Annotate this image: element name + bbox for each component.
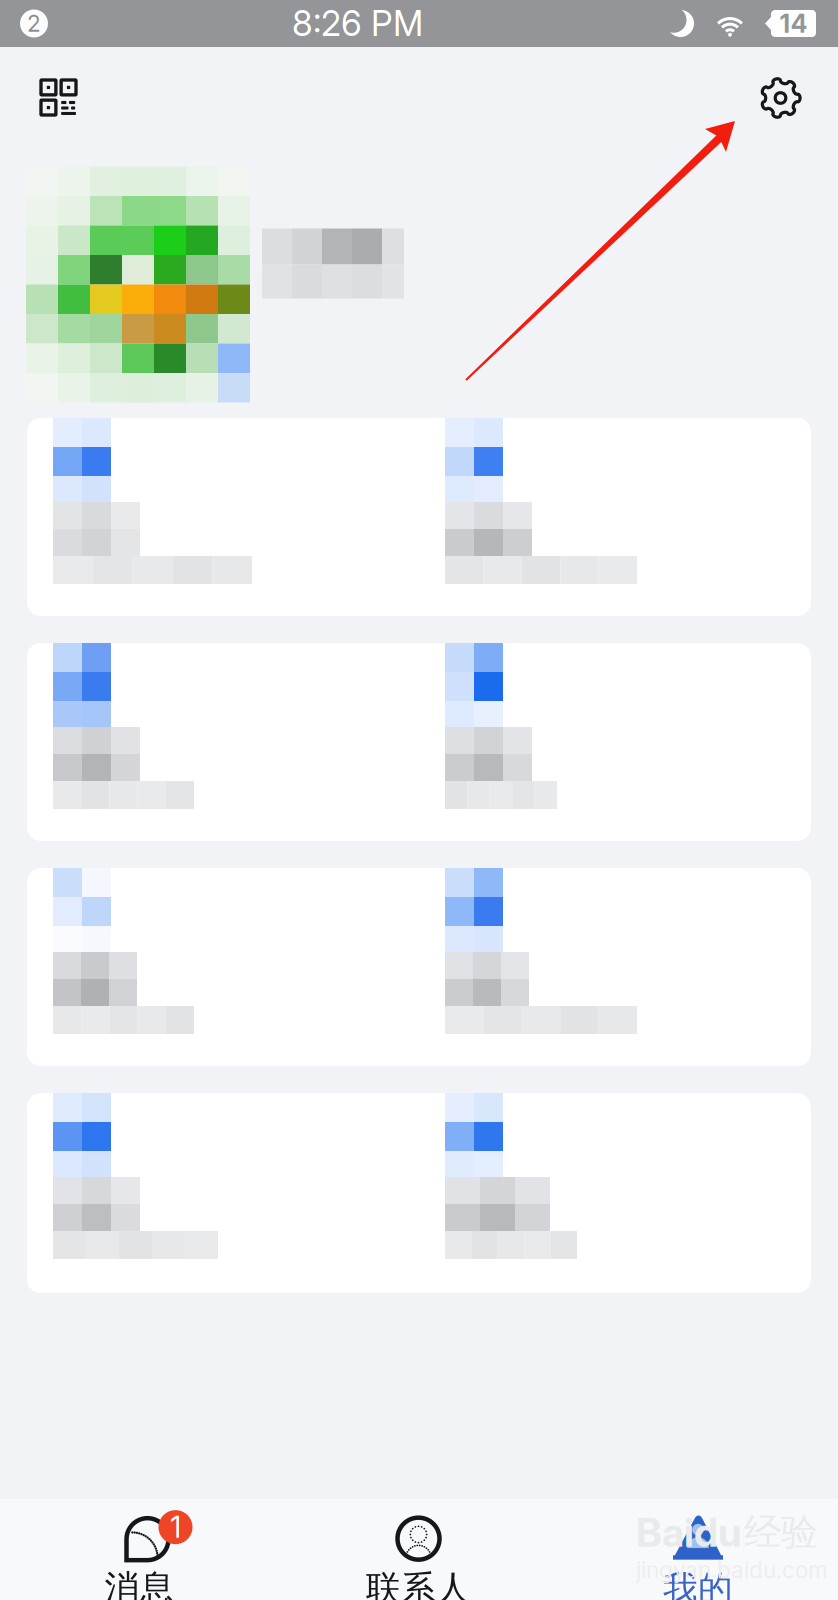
staticText: 8:26 PM — [292, 2, 423, 44]
button[interactable]: 联系人 — [279, 1499, 558, 1600]
staticText: 我的 — [663, 1567, 733, 1600]
button[interactable] — [419, 868, 811, 1066]
button[interactable] — [419, 418, 811, 616]
staticText: 经验 — [744, 1509, 818, 1556]
button[interactable]: 我的 — [558, 1499, 838, 1600]
staticText: 14 — [779, 8, 807, 39]
button[interactable]: Settings — [759, 44, 838, 145]
staticText: 消息 — [104, 1566, 174, 1600]
staticText: 联系人 — [366, 1567, 471, 1600]
staticText: 2 — [27, 10, 41, 37]
button[interactable] — [27, 1093, 419, 1293]
staticText: 1 — [170, 1509, 181, 1545]
button[interactable] — [419, 643, 811, 841]
button[interactable] — [419, 1093, 811, 1293]
button[interactable] — [27, 868, 419, 1066]
button[interactable]: Scan QR code — [0, 47, 76, 143]
button[interactable] — [27, 418, 419, 616]
staticText: jingyan.baidu.com — [636, 1556, 828, 1584]
button[interactable] — [27, 643, 419, 841]
button[interactable]: 1 — [0, 1499, 279, 1600]
staticText: Baidu — [636, 1508, 742, 1556]
